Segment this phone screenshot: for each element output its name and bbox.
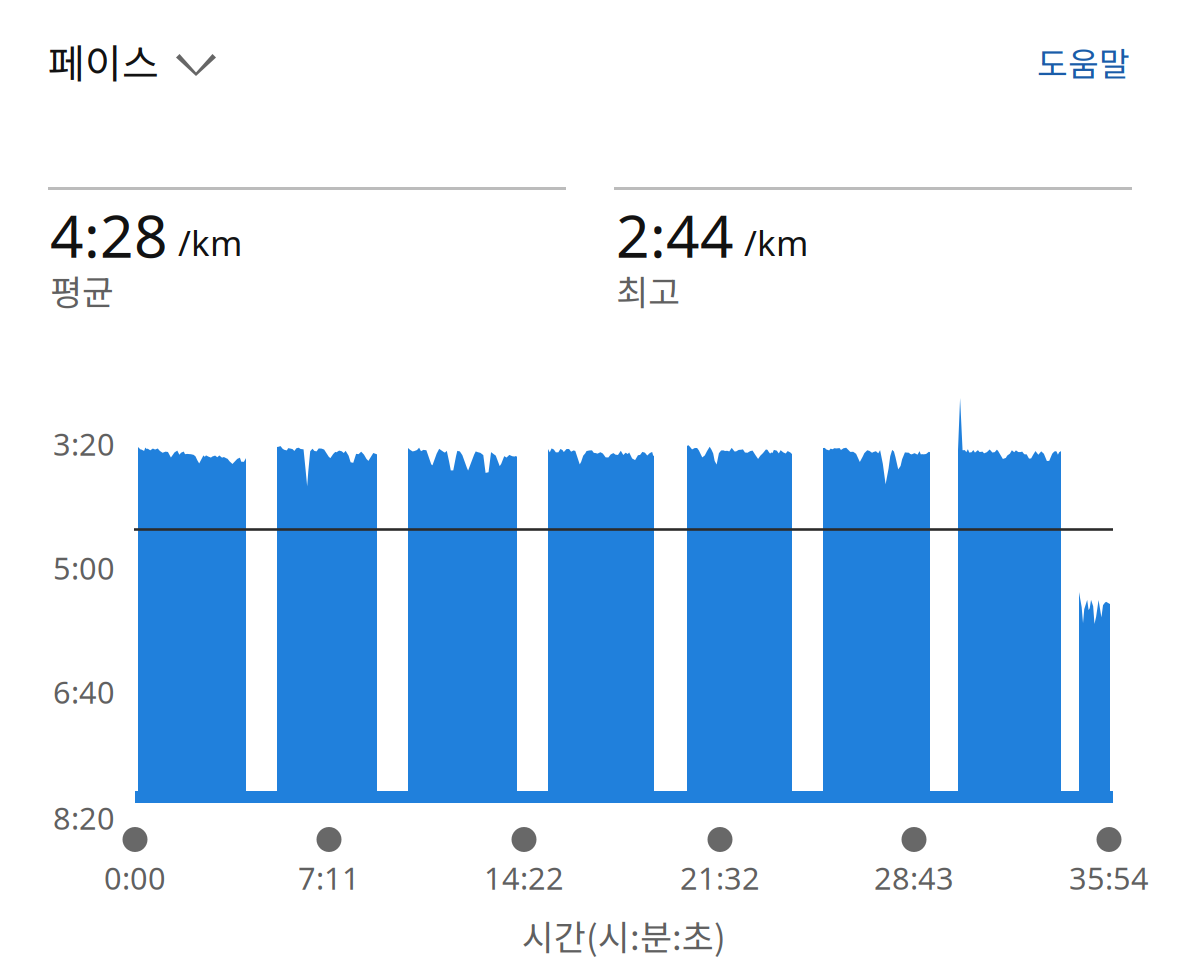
staticText: 7:11 [298,857,360,899]
staticText: 평균 [50,265,114,315]
staticText: 28:43 [874,857,954,899]
staticText: 도움말 [1037,38,1130,86]
staticText: 2:44 [616,195,734,275]
staticText: 3:20 [53,423,115,465]
staticText: 페이스 [48,32,159,90]
button[interactable]: 페이스 [0,29,226,93]
staticText: 21:32 [680,857,760,899]
staticText: 시간(시:분:초) [522,910,726,960]
staticText: 4:28 [50,195,168,275]
staticText: /km [178,219,242,266]
staticText: 최고 [616,265,680,315]
staticText: 8:20 [53,797,115,839]
staticText: 6:40 [53,671,115,713]
staticText: /km [744,219,808,266]
staticText: 0:00 [104,857,166,899]
staticText: 35:54 [1069,857,1149,899]
staticText: 5:00 [53,547,115,589]
button[interactable]: 도움말 [1012,30,1154,94]
staticText: 14:22 [484,857,564,899]
